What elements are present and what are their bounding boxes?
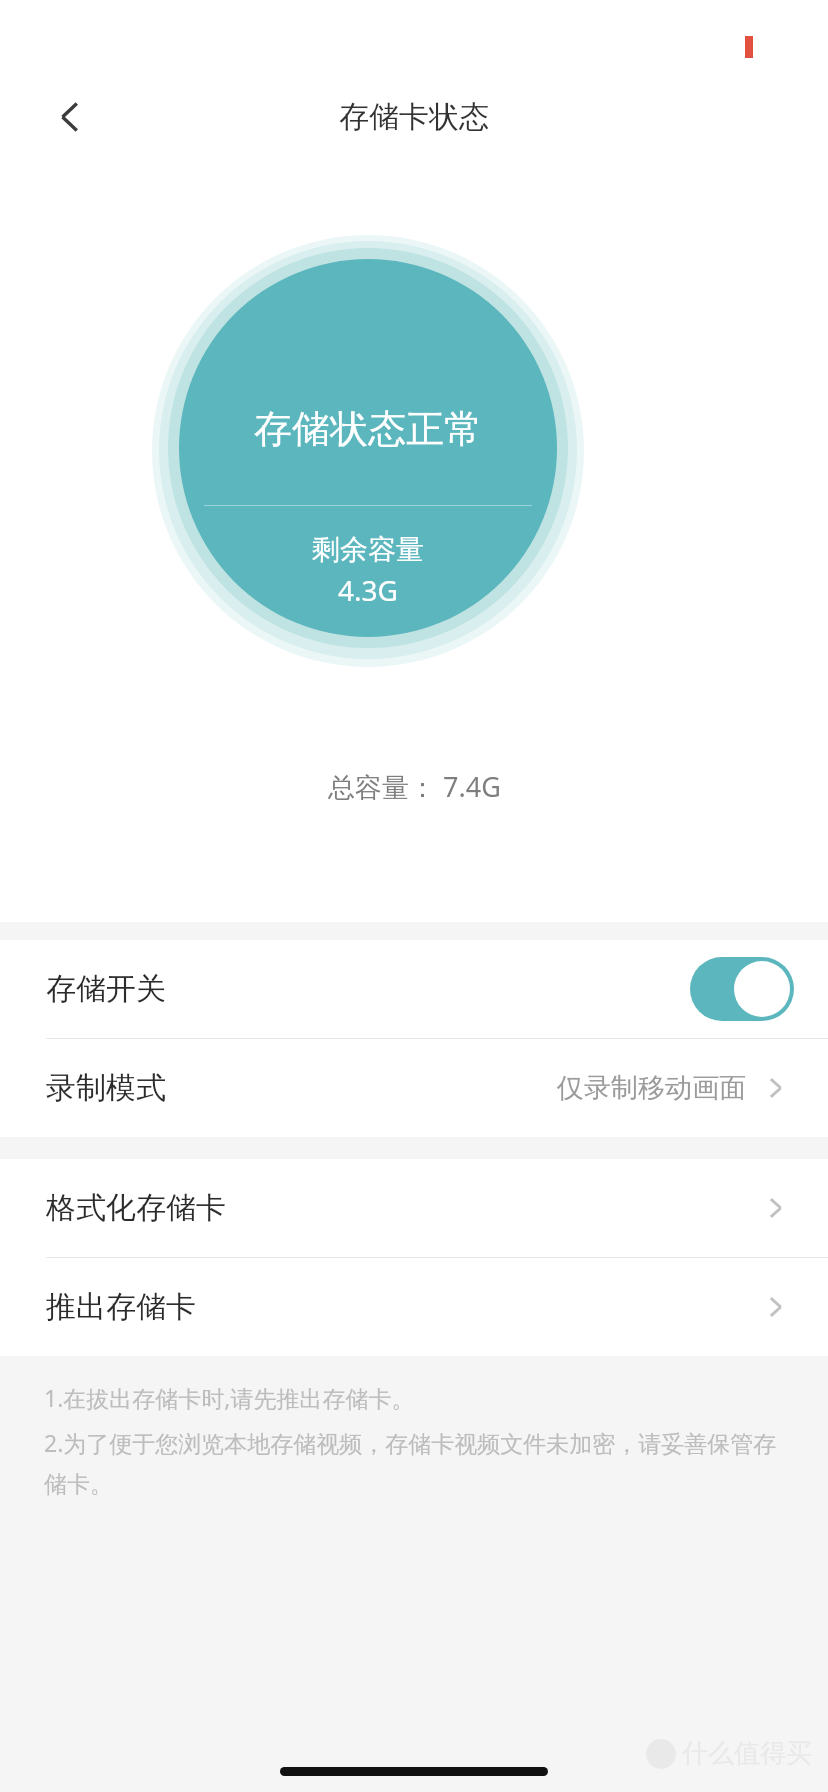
staticText: 存储开关 — [46, 970, 166, 1008]
staticText: 1.在拔出存储卡时,请先推出存储卡。 — [44, 1382, 415, 1413]
staticText: 格式化存储卡 — [46, 1189, 226, 1227]
button[interactable]: 录制模式 — [0, 1039, 828, 1137]
staticText: 总容量： 7.4G — [328, 768, 501, 805]
staticText: 录制模式 — [46, 1069, 166, 1107]
button[interactable]: Back — [36, 83, 104, 151]
staticText: 剩余容量 — [312, 532, 424, 567]
staticText: 什么值得买 — [682, 1737, 812, 1770]
button[interactable]: 存储开关 — [0, 940, 828, 1038]
staticText: 仅录制移动画面 — [557, 1071, 746, 1105]
staticText: 推出存储卡 — [46, 1288, 196, 1326]
staticText: 存储卡状态 — [339, 98, 489, 136]
button[interactable]: 格式化存储卡 — [0, 1159, 828, 1257]
staticText: 4.3G — [338, 571, 398, 609]
button[interactable]: 推出存储卡 — [0, 1258, 828, 1356]
staticText: 存储状态正常 — [254, 405, 482, 453]
staticText: 2.为了便于您浏览本地存储视频，存储卡视频文件未加密，请妥善保管存储卡。 — [44, 1427, 792, 1499]
